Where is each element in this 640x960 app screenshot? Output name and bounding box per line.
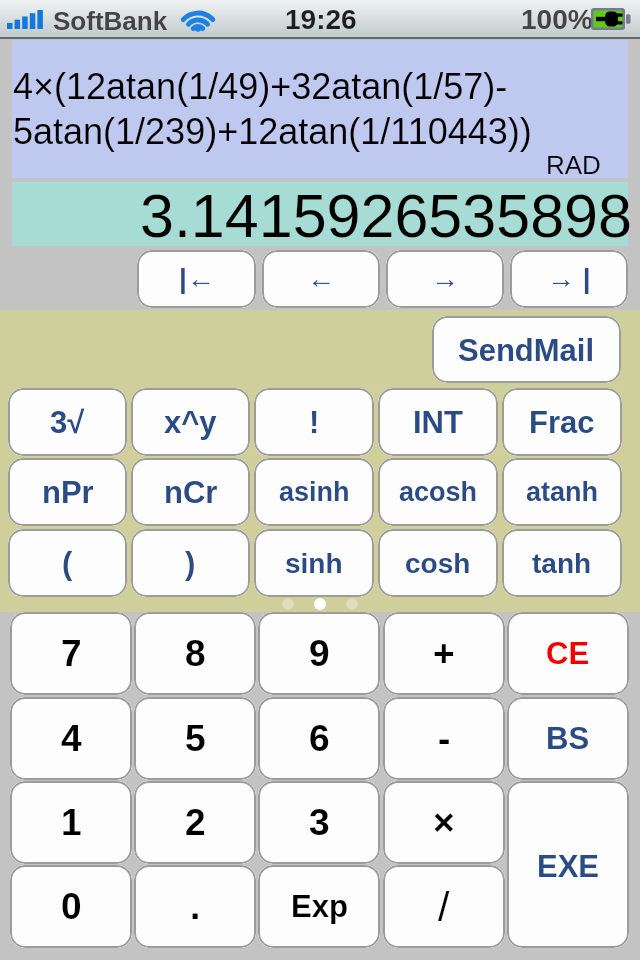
- button[interactable]: 5: [134, 697, 256, 780]
- staticText: /: [438, 884, 450, 930]
- staticText: 19:26: [285, 4, 357, 35]
- button[interactable]: Move right: [386, 250, 504, 308]
- staticText: 2: [185, 802, 206, 843]
- staticText: .: [190, 886, 201, 927]
- button[interactable]: cosh: [378, 529, 498, 597]
- button[interactable]: nPr: [8, 458, 127, 526]
- button[interactable]: 9: [258, 612, 380, 695]
- button[interactable]: Exp: [258, 865, 380, 948]
- button[interactable]: 7: [10, 612, 132, 695]
- staticText: 1: [61, 802, 82, 843]
- staticText: 5: [185, 718, 206, 759]
- staticText: -: [438, 718, 451, 759]
- button[interactable]: Move left: [262, 250, 380, 308]
- staticText: acosh: [399, 477, 478, 507]
- staticText: 4: [61, 718, 82, 759]
- button[interactable]: asinh: [254, 458, 374, 526]
- staticText: nCr: [164, 475, 218, 510]
- button[interactable]: ×: [383, 781, 505, 864]
- staticText: ): [185, 546, 196, 581]
- staticText: atanh: [526, 477, 599, 507]
- button[interactable]: tanh: [502, 529, 622, 597]
- button[interactable]: INT: [378, 388, 498, 456]
- staticText: 3: [309, 802, 330, 843]
- button[interactable]: 0: [10, 865, 132, 948]
- button[interactable]: sinh: [254, 529, 374, 597]
- button[interactable]: 2: [134, 781, 256, 864]
- button[interactable]: -: [383, 697, 505, 780]
- staticText: EXE: [537, 849, 600, 884]
- staticText: tanh: [532, 548, 592, 579]
- staticText: RAD: [546, 150, 601, 179]
- staticText: →: [431, 263, 459, 294]
- staticText: sinh: [285, 548, 343, 579]
- button[interactable]: +: [383, 612, 505, 695]
- button[interactable]: x^y: [131, 388, 250, 456]
- staticText: → |: [547, 263, 591, 294]
- staticText: cosh: [405, 548, 471, 579]
- button[interactable]: atanh: [502, 458, 622, 526]
- button[interactable]: BS: [507, 697, 629, 780]
- staticText: |←: [179, 263, 215, 294]
- staticText: asinh: [279, 477, 350, 507]
- button[interactable]: 3√: [8, 388, 127, 456]
- staticText: SendMail: [458, 333, 595, 368]
- staticText: 9: [309, 633, 330, 674]
- button[interactable]: 6: [258, 697, 380, 780]
- button[interactable]: ): [131, 529, 250, 597]
- staticText: 7: [61, 633, 82, 674]
- staticText: (: [62, 546, 73, 581]
- staticText: +: [433, 633, 455, 674]
- button[interactable]: Move to end: [510, 250, 628, 308]
- staticText: 8: [185, 633, 206, 674]
- staticText: ×: [433, 802, 455, 843]
- staticText: 0: [61, 886, 82, 927]
- button[interactable]: SendMail: [432, 316, 621, 383]
- staticText: SoftBank: [53, 6, 168, 35]
- staticText: BS: [546, 721, 590, 756]
- button[interactable]: .: [134, 865, 256, 948]
- button[interactable]: Frac: [502, 388, 622, 456]
- staticText: nPr: [42, 475, 94, 510]
- staticText: INT: [413, 405, 463, 440]
- button[interactable]: !: [254, 388, 374, 456]
- button[interactable]: 8: [134, 612, 256, 695]
- button[interactable]: /: [383, 865, 505, 948]
- staticText: Exp: [291, 889, 348, 924]
- button[interactable]: (: [8, 529, 127, 597]
- staticText: 6: [309, 718, 330, 759]
- button[interactable]: nCr: [131, 458, 250, 526]
- button[interactable]: Move to start: [137, 250, 256, 308]
- staticText: 100%: [521, 4, 593, 35]
- button[interactable]: CE: [507, 612, 629, 695]
- staticText: !: [309, 405, 320, 440]
- button[interactable]: 4: [10, 697, 132, 780]
- button[interactable]: 1: [10, 781, 132, 864]
- staticText: 3.1415926535898: [140, 182, 632, 246]
- button[interactable]: acosh: [378, 458, 498, 526]
- staticText: CE: [546, 636, 590, 671]
- staticText: 4×(12atan(1/49)+32atan(1/57)- 5atan(1/23…: [13, 66, 532, 152]
- staticText: 3√: [50, 405, 85, 440]
- staticText: ←: [307, 263, 335, 294]
- staticText: x^y: [164, 405, 217, 440]
- staticText: Frac: [529, 405, 595, 440]
- button[interactable]: 3: [258, 781, 380, 864]
- button[interactable]: EXE: [507, 781, 629, 948]
